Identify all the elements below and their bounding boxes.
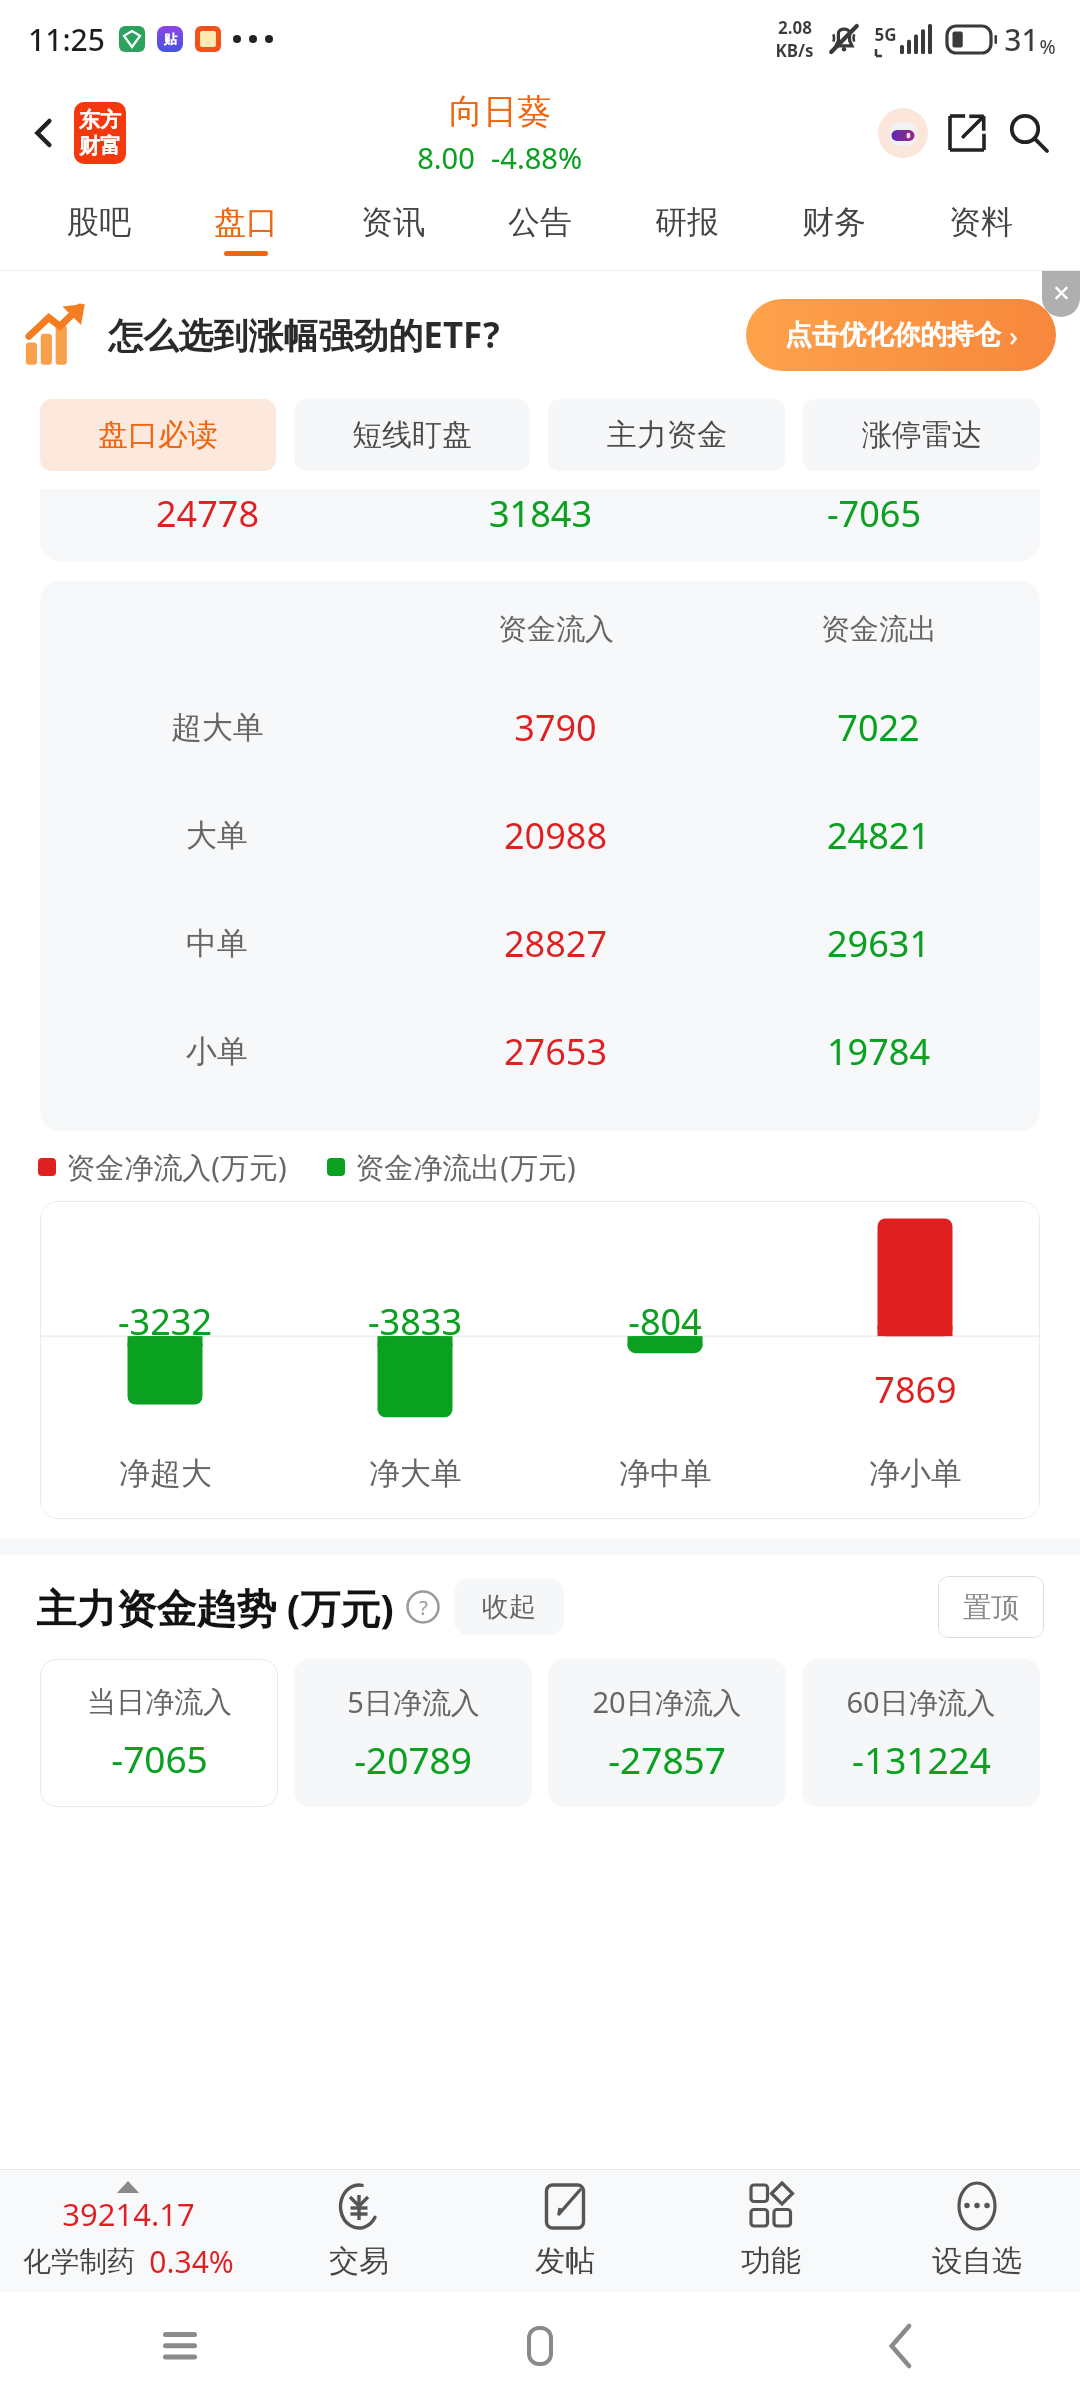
staticText: 24821 [827, 811, 930, 860]
button[interactable]: 大单 [40, 781, 1040, 889]
button[interactable]: Close [1042, 271, 1080, 317]
button[interactable]: 小单 [40, 997, 1040, 1105]
staticText: 大单 [186, 816, 248, 855]
button[interactable]: 短线盯盘 [294, 399, 530, 471]
button[interactable]: 财务 [760, 188, 907, 270]
staticText: 资金净流入(万元) [66, 1147, 287, 1187]
staticText: 盘口 [214, 202, 278, 242]
staticText: 研报 [655, 202, 719, 242]
staticText: 28827 [504, 919, 607, 968]
staticText: 功能 [741, 2242, 801, 2280]
button[interactable]: 涨停雷达 [803, 399, 1040, 471]
button[interactable]: 主力资金 [548, 399, 785, 471]
staticText: 短线盯盘 [352, 416, 472, 454]
staticText: 8.00 [417, 138, 475, 177]
staticText: 盘口必读 [98, 416, 218, 454]
button[interactable]: 公告 [466, 188, 613, 270]
button[interactable]: 研报 [613, 188, 760, 270]
staticText: 20988 [504, 811, 607, 860]
staticText: 11:25 [28, 19, 105, 60]
button[interactable]: Home [360, 2292, 720, 2400]
button[interactable]: 当日净流入 [40, 1659, 278, 1807]
staticText: 2.08 [778, 16, 812, 39]
button[interactable]: 39214.17 [0, 2170, 256, 2292]
button[interactable]: Share [938, 104, 996, 162]
button[interactable]: 置顶 [938, 1576, 1044, 1638]
staticText: -4.88% [491, 138, 582, 177]
staticText: 怎么选到涨幅强劲的ETF? [108, 311, 500, 359]
staticText: -131224 [852, 1734, 991, 1784]
staticText: 20日净流入 [592, 1682, 742, 1722]
staticText: 3790 [514, 703, 597, 752]
button[interactable]: 5日净流入 [294, 1659, 532, 1807]
staticText: 化学制药 [23, 2244, 135, 2279]
staticText: -20789 [354, 1734, 472, 1784]
button[interactable]: Search [1000, 104, 1058, 162]
staticText: 31 [1004, 19, 1039, 60]
staticText: 向日葵 [449, 90, 551, 133]
staticText: 0.34% [149, 2241, 234, 2282]
staticText: 净小单 [869, 1454, 962, 1493]
staticText: -3232 [118, 1297, 212, 1346]
button[interactable]: 收起 [454, 1579, 564, 1635]
button[interactable]: 60日净流入 [802, 1659, 1040, 1807]
staticText: 7869 [874, 1365, 957, 1414]
button[interactable]: 中单 [40, 889, 1040, 997]
staticText: 7022 [837, 703, 920, 752]
staticText: 39214.17 [62, 2193, 195, 2235]
staticText: 发帖 [535, 2242, 595, 2280]
button[interactable]: Back [18, 107, 70, 159]
button[interactable]: 股吧 [26, 188, 172, 270]
button[interactable]: 点击优化你的持仓 [746, 299, 1056, 371]
staticText: 财富 [79, 133, 121, 159]
staticText: 交易 [329, 2242, 389, 2280]
staticText: 公告 [508, 202, 572, 242]
button[interactable]: 盘口必读 [40, 399, 276, 471]
staticText: 设自选 [932, 2242, 1022, 2280]
staticText: 27653 [504, 1027, 607, 1076]
staticText: 点击优化你的持仓 [785, 318, 1001, 352]
button[interactable]: 向日葵 [417, 90, 582, 177]
staticText: KB/s [775, 39, 814, 62]
staticText: 东方 [79, 107, 121, 133]
button[interactable]: 盘口 [172, 188, 319, 270]
staticText: -3833 [368, 1297, 462, 1346]
button[interactable]: 设自选 [874, 2170, 1080, 2292]
staticText: 置顶 [963, 1590, 1019, 1625]
staticText: 贴 [164, 31, 177, 47]
staticText: 资金净流出(万元) [355, 1147, 576, 1187]
button[interactable]: 超大单 [40, 673, 1040, 781]
staticText: 当日净流入 [87, 1684, 232, 1721]
button[interactable]: 发帖 [462, 2170, 668, 2292]
button[interactable]: 东方财富 [74, 102, 126, 164]
staticText: 资金流入 [498, 611, 614, 648]
staticText: 19784 [827, 1027, 930, 1076]
staticText: 股吧 [67, 202, 131, 242]
button[interactable]: 资讯 [319, 188, 466, 270]
staticText: 超大单 [171, 708, 264, 747]
staticText: 31843 [489, 489, 592, 538]
staticText: 29631 [827, 919, 930, 968]
staticText: -27857 [608, 1734, 726, 1784]
staticText: 主力资金趋势 (万元) [36, 1580, 394, 1635]
button[interactable]: 交易 [256, 2170, 462, 2292]
button[interactable]: 功能 [668, 2170, 874, 2292]
staticText: 主力资金 [607, 416, 727, 454]
staticText: 中单 [186, 924, 248, 963]
button[interactable]: 资料 [907, 188, 1054, 270]
staticText: 5日净流入 [347, 1682, 480, 1722]
staticText: -7065 [827, 489, 921, 538]
staticText: ✕ [1052, 281, 1071, 307]
button[interactable]: Recents [0, 2292, 360, 2400]
staticText: 小单 [186, 1032, 248, 1071]
button[interactable]: Back [720, 2292, 1080, 2400]
button[interactable]: 20日净流入 [548, 1659, 786, 1807]
staticText: 涨停雷达 [862, 416, 982, 454]
button[interactable]: AI助手 [874, 104, 932, 162]
staticText: -7065 [111, 1733, 208, 1783]
staticText: 资讯 [361, 202, 425, 242]
staticText: 净中单 [619, 1454, 712, 1493]
staticText: 60日净流入 [846, 1682, 996, 1722]
button[interactable]: Help [406, 1590, 440, 1624]
staticText: › [1009, 316, 1018, 354]
